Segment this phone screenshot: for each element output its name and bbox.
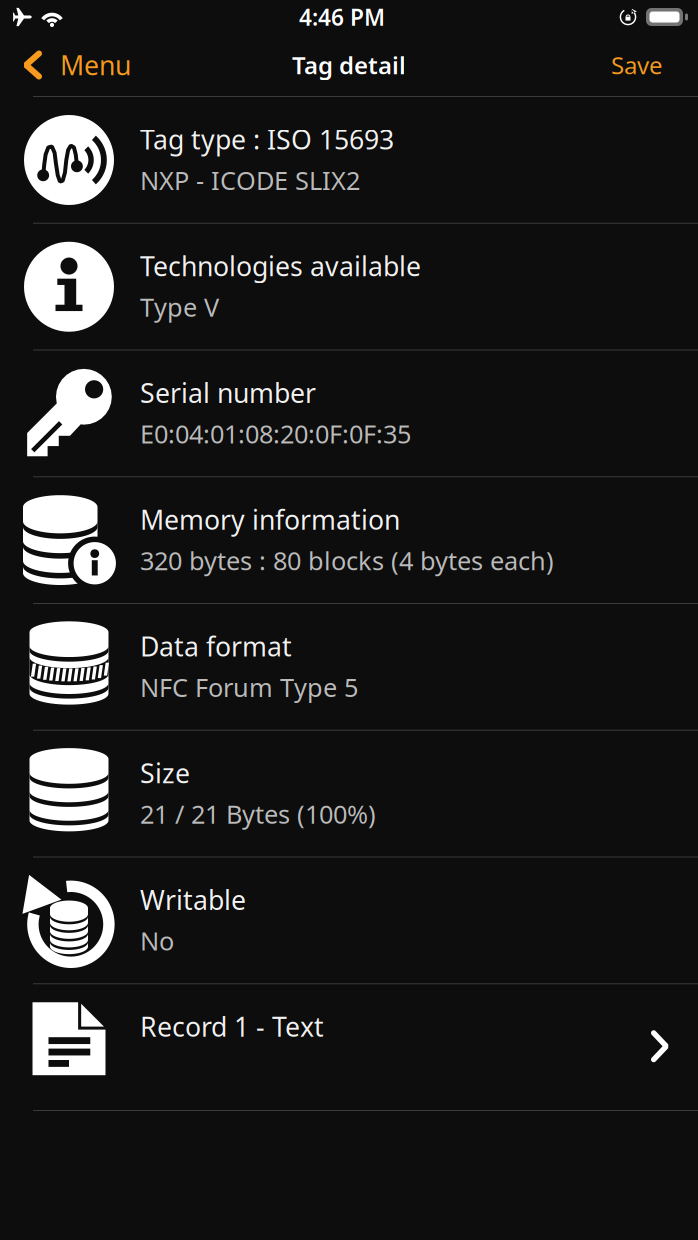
staticText: Menu xyxy=(60,47,131,83)
button[interactable]: Record 1 - Text xyxy=(0,984,698,1111)
staticText: Writable xyxy=(140,882,246,917)
staticText: Tag type : ISO 15693 xyxy=(140,121,394,157)
staticText: E0:04:01:08:20:0F:0F:35 xyxy=(140,417,411,450)
button[interactable]: Memory information xyxy=(0,477,698,604)
button[interactable]: Writable xyxy=(0,857,698,984)
staticText: Record 1 - Text xyxy=(140,1009,324,1044)
staticText: Data format xyxy=(140,628,292,664)
button[interactable]: Save xyxy=(593,35,698,95)
staticText: 21 / 21 Bytes (100%) xyxy=(140,797,376,831)
staticText: Save xyxy=(611,49,663,81)
staticText: No xyxy=(140,924,174,957)
staticText: 4:46 PM xyxy=(299,2,385,32)
staticText: Size xyxy=(140,755,190,791)
button[interactable]: Serial number xyxy=(0,350,698,477)
staticText: 320 bytes : 80 blocks (4 bytes each) xyxy=(140,544,554,577)
button[interactable]: Tag type : ISO 15693 xyxy=(0,97,698,224)
staticText: NFC Forum Type 5 xyxy=(140,670,358,704)
button[interactable]: Technologies available xyxy=(0,224,698,351)
button[interactable]: Menu xyxy=(0,35,147,95)
staticText: Tag detail xyxy=(292,49,406,81)
staticText: Type V xyxy=(140,290,219,324)
staticText: NXP - ICODE SLIX2 xyxy=(140,163,360,197)
button[interactable]: Size xyxy=(0,731,698,858)
button[interactable]: Data format xyxy=(0,604,698,731)
staticText: Memory information xyxy=(140,502,400,537)
staticText: Serial number xyxy=(140,375,316,410)
staticText: Technologies available xyxy=(140,248,421,284)
